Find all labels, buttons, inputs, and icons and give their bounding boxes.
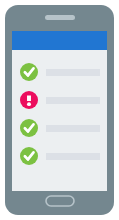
button[interactable]: Alert bbox=[12, 91, 107, 109]
button[interactable]: Done bbox=[12, 63, 107, 81]
button[interactable]: Done bbox=[12, 119, 107, 137]
other: Done bbox=[20, 119, 38, 137]
button[interactable]: Done bbox=[12, 147, 107, 165]
other: Done bbox=[20, 147, 38, 165]
other: Alert bbox=[20, 91, 38, 109]
button[interactable]: Home bbox=[45, 195, 75, 207]
other: Done bbox=[20, 63, 38, 81]
